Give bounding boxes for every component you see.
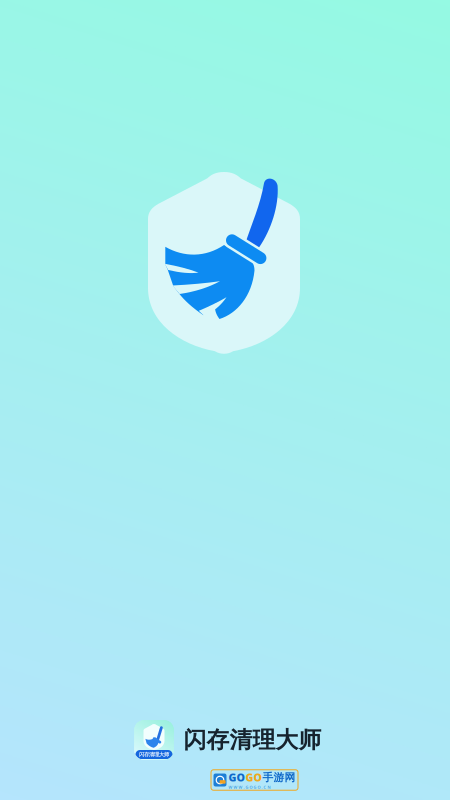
staticText: W W W . G O G O . C N (228, 784, 270, 790)
staticText: 闪存清理大师 (139, 751, 169, 758)
staticText: GO (228, 770, 245, 784)
staticText: GO (245, 770, 262, 784)
staticText: 手游网 (262, 771, 295, 784)
staticText: 闪存清理大师 (183, 726, 321, 754)
